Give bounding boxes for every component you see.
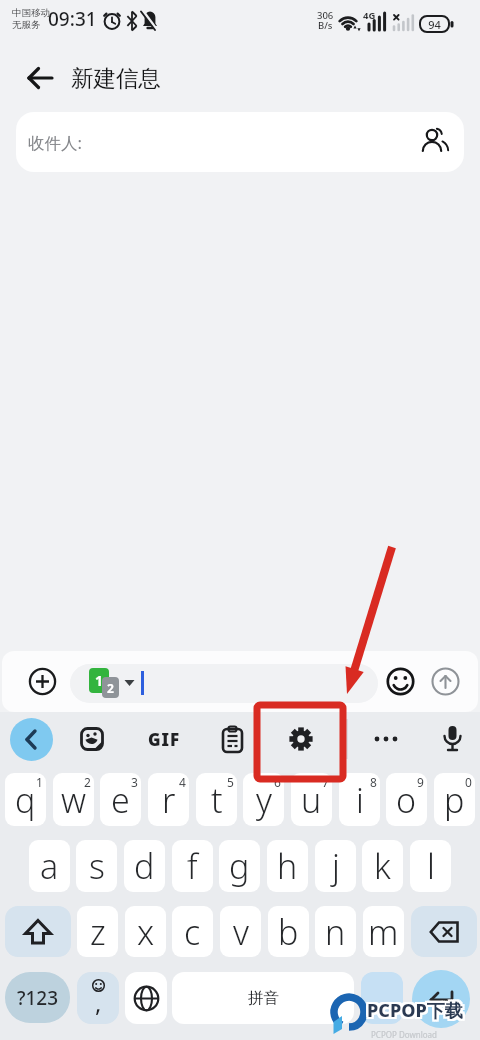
staticText: PCPOP下载: [367, 996, 463, 1021]
button[interactable]: w: [53, 773, 94, 826]
staticText: l: [427, 843, 435, 889]
button[interactable]: l: [410, 840, 451, 892]
button[interactable]: [442, 725, 463, 753]
button[interactable]: [10, 718, 53, 761]
staticText: y: [256, 777, 272, 823]
staticText: 9: [417, 774, 424, 790]
staticText: r: [162, 777, 176, 823]
staticText: ,: [95, 986, 102, 1019]
button[interactable]: g: [219, 840, 260, 892]
button[interactable]: [20, 62, 60, 96]
staticText: PCPOP下载: [369, 998, 465, 1023]
button[interactable]: t: [196, 773, 237, 826]
button[interactable]: u: [291, 773, 332, 826]
button[interactable]: [386, 667, 415, 696]
staticText: 拼音: [248, 988, 279, 1008]
staticText: 6: [274, 774, 281, 790]
staticText: PCPOP下载: [365, 998, 461, 1023]
staticText: 无服务: [12, 19, 41, 31]
button[interactable]: [289, 727, 313, 751]
button[interactable]: [5, 906, 71, 957]
staticText: v: [233, 909, 249, 955]
staticText: 4G: [363, 9, 376, 22]
button[interactable]: ?123: [5, 972, 70, 1023]
button[interactable]: ,: [77, 972, 119, 1024]
button[interactable]: e: [100, 773, 141, 826]
button[interactable]: m: [363, 906, 404, 957]
button[interactable]: v: [220, 906, 261, 957]
staticText: m: [368, 909, 399, 955]
staticText: 中国移动: [12, 7, 50, 19]
staticText: 09:31: [48, 6, 97, 32]
button[interactable]: 拼音: [172, 972, 354, 1024]
button[interactable]: f: [172, 840, 213, 892]
button[interactable]: GIF: [143, 727, 185, 751]
button[interactable]: [221, 725, 244, 753]
staticText: 0: [465, 774, 472, 790]
staticText: g: [229, 843, 250, 889]
button[interactable]: [412, 970, 470, 1028]
staticText: 94: [428, 17, 441, 32]
button[interactable]: k: [362, 840, 403, 892]
staticText: ?123: [17, 985, 59, 1011]
button[interactable]: r: [148, 773, 189, 826]
staticText: GIF: [148, 728, 181, 751]
staticText: PCPOP下载: [367, 1000, 463, 1025]
staticText: u: [301, 777, 322, 823]
staticText: i: [356, 777, 364, 823]
staticText: a: [40, 843, 59, 889]
staticText: PCPOP下载: [367, 998, 463, 1023]
staticText: h: [277, 843, 298, 889]
staticText: e: [111, 777, 130, 823]
staticText: t: [211, 777, 223, 823]
staticText: q: [15, 777, 36, 823]
button[interactable]: q: [5, 773, 46, 826]
staticText: p: [444, 777, 465, 823]
button[interactable]: a: [29, 840, 70, 892]
staticText: 1: [95, 671, 104, 690]
staticText: x: [137, 909, 155, 955]
button[interactable]: p: [434, 773, 475, 826]
staticText: w: [61, 777, 86, 823]
button[interactable]: [411, 906, 477, 957]
button[interactable]: [371, 727, 401, 751]
button[interactable]: [125, 972, 167, 1024]
staticText: b: [278, 909, 299, 955]
button[interactable]: [28, 667, 57, 696]
staticText: k: [374, 843, 391, 889]
button[interactable]: [431, 667, 460, 696]
staticText: j: [332, 843, 340, 889]
button[interactable]: [80, 727, 104, 751]
staticText: PCPOP下载: [365, 996, 461, 1021]
staticText: 3: [131, 774, 138, 790]
staticText: z: [90, 909, 106, 955]
staticText: PCPOP Download: [371, 1029, 437, 1040]
button[interactable]: i: [339, 773, 380, 826]
button[interactable]: y: [243, 773, 284, 826]
staticText: PCPOP下载: [365, 1000, 461, 1025]
staticText: d: [134, 843, 155, 889]
button[interactable]: c: [172, 906, 213, 957]
staticText: 2: [84, 774, 91, 790]
staticText: 收件人:: [28, 131, 82, 154]
staticText: 5: [227, 774, 234, 790]
button[interactable]: d: [124, 840, 165, 892]
button[interactable]: h: [267, 840, 308, 892]
staticText: n: [325, 909, 346, 955]
button[interactable]: j: [315, 840, 356, 892]
button[interactable]: z: [77, 906, 118, 957]
button[interactable]: b: [268, 906, 309, 957]
staticText: PCPOP下载: [369, 1000, 465, 1025]
staticText: 8: [370, 774, 377, 790]
staticText: 306: [317, 9, 334, 22]
button[interactable]: o: [386, 773, 427, 826]
button[interactable]: x: [125, 906, 166, 957]
staticText: 新建信息: [71, 64, 161, 92]
button[interactable]: s: [76, 840, 117, 892]
staticText: o: [396, 777, 417, 823]
button[interactable]: [361, 972, 403, 1024]
button[interactable]: 1: [70, 664, 378, 703]
staticText: f: [187, 843, 198, 889]
button[interactable]: 收件人:: [16, 112, 464, 172]
button[interactable]: n: [315, 906, 356, 957]
